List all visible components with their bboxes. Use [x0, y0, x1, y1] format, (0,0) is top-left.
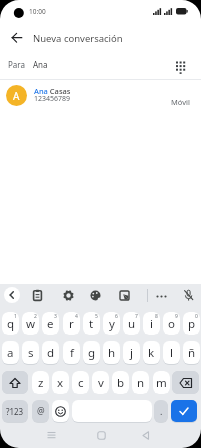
staticText: j	[130, 345, 133, 361]
staticText: a	[7, 345, 14, 361]
staticText: 6	[115, 313, 118, 320]
staticText: e	[47, 316, 54, 332]
staticText: c	[78, 375, 84, 391]
staticText: ?123	[6, 406, 24, 417]
button[interactable]: @	[32, 400, 49, 422]
button[interactable]	[8, 29, 26, 47]
staticText: b	[117, 375, 125, 391]
button[interactable]: u	[123, 312, 140, 335]
staticText: Ana Casas	[34, 86, 71, 96]
staticText: 8	[155, 313, 158, 320]
button[interactable]: A	[0, 82, 201, 114]
staticText: Nueva conversación	[33, 32, 123, 45]
button[interactable]: h	[103, 341, 120, 364]
button[interactable]: g	[83, 341, 100, 364]
button[interactable]	[52, 400, 69, 422]
staticText: Para	[8, 59, 25, 70]
button[interactable]: i	[143, 312, 160, 335]
staticText: g	[88, 345, 96, 361]
staticText: 9	[175, 313, 178, 320]
staticText: x	[57, 375, 64, 391]
staticText: n	[137, 375, 145, 391]
staticText: ñ	[188, 345, 196, 361]
staticText: v	[98, 375, 104, 391]
button[interactable]	[62, 289, 75, 302]
button[interactable]: z	[32, 371, 49, 394]
button[interactable]: o	[163, 312, 180, 335]
button[interactable]: y	[103, 312, 120, 335]
staticText: u	[128, 316, 136, 332]
staticText: 123456789	[34, 94, 71, 104]
staticText: z	[38, 375, 44, 391]
staticText: 3	[54, 313, 57, 320]
button[interactable]	[4, 287, 20, 303]
button[interactable]	[118, 289, 131, 302]
button[interactable]: .	[154, 400, 168, 422]
staticText: q	[7, 316, 15, 332]
button[interactable]	[47, 431, 56, 440]
staticText: k	[148, 345, 155, 361]
button[interactable]: j	[123, 341, 140, 364]
staticText: r	[69, 316, 74, 332]
button[interactable]: m	[153, 371, 170, 394]
button[interactable]	[89, 289, 102, 302]
staticText: Ana	[33, 59, 48, 70]
staticText: 5	[95, 313, 98, 320]
staticText: y	[109, 316, 115, 332]
button[interactable]: d	[42, 341, 59, 364]
button[interactable]: w	[22, 312, 39, 335]
button[interactable]: v	[92, 371, 109, 394]
button[interactable]	[97, 431, 106, 440]
button[interactable]: e	[42, 312, 59, 335]
button[interactable]: k	[143, 341, 160, 364]
button[interactable]: n	[132, 371, 149, 394]
button[interactable]: x	[52, 371, 69, 394]
staticText: 2	[34, 313, 37, 320]
staticText: f	[70, 345, 74, 361]
staticText: i	[150, 316, 153, 332]
staticText: t	[89, 316, 94, 332]
staticText: m	[156, 375, 167, 391]
staticText: 4	[75, 313, 78, 320]
button[interactable]: p	[183, 312, 200, 335]
staticText: 1	[14, 313, 17, 320]
button[interactable]	[141, 431, 150, 440]
staticText: .	[160, 405, 163, 417]
button[interactable]: a	[2, 341, 19, 364]
button[interactable]: r	[63, 312, 80, 335]
button[interactable]: ?123	[2, 400, 28, 422]
staticText: 10:00	[29, 7, 46, 16]
button[interactable]: Para	[0, 54, 201, 80]
staticText: A	[13, 89, 20, 103]
button[interactable]: c	[72, 371, 89, 394]
staticText: d	[47, 345, 55, 361]
button[interactable]	[171, 400, 197, 422]
staticText: s	[28, 345, 34, 361]
button[interactable]	[182, 289, 195, 302]
button[interactable]	[172, 371, 199, 394]
staticText: Móvil	[171, 97, 190, 107]
button[interactable]: ñ	[183, 341, 200, 364]
button[interactable]: q	[2, 312, 19, 335]
staticText: h	[108, 345, 116, 361]
button[interactable]	[72, 400, 152, 422]
staticText: 7	[135, 313, 138, 320]
button[interactable]	[2, 371, 28, 394]
staticText: @	[37, 405, 45, 417]
button[interactable]	[155, 289, 168, 302]
staticText: 0	[195, 313, 198, 320]
button[interactable]: s	[22, 341, 39, 364]
button[interactable]: l	[163, 341, 180, 364]
staticText: w	[26, 316, 36, 332]
button[interactable]	[31, 289, 44, 302]
staticText: o	[168, 316, 175, 332]
staticText: l	[170, 345, 173, 361]
button[interactable]: t	[83, 312, 100, 335]
button[interactable]: f	[63, 341, 80, 364]
staticText: p	[188, 316, 196, 332]
button[interactable]: b	[112, 371, 129, 394]
